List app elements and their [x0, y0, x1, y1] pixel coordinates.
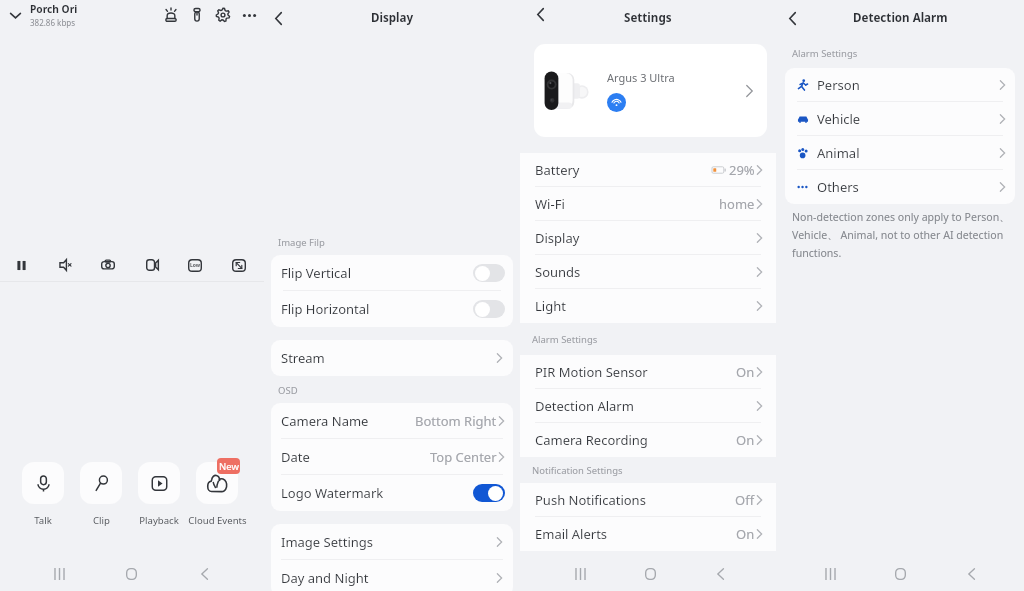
- button[interactable]: Stream: [271, 340, 513, 376]
- staticText: Wi-Fi: [535, 195, 565, 213]
- button[interactable]: Toggle: [473, 484, 505, 502]
- staticText: Sounds: [535, 263, 581, 281]
- button[interactable]: Pause: [8, 252, 34, 278]
- staticText: Non-detection zones only apply to Person…: [792, 210, 1010, 260]
- button[interactable]: Home: [635, 559, 665, 589]
- staticText: Light: [535, 297, 566, 315]
- button[interactable]: More options: [238, 4, 260, 26]
- button[interactable]: Image Settings: [271, 524, 513, 560]
- staticText: Battery: [535, 161, 580, 179]
- button[interactable]: Back: [705, 559, 735, 589]
- button[interactable]: Back: [189, 559, 219, 589]
- button[interactable]: Snapshot: [95, 252, 121, 278]
- staticText: Low: [190, 262, 201, 269]
- staticText: Date: [281, 448, 310, 466]
- staticText: Talk: [34, 514, 52, 527]
- staticText: Flip Vertical: [281, 264, 352, 282]
- button[interactable]: Home: [116, 559, 146, 589]
- staticText: Alarm Settings: [532, 333, 598, 346]
- button[interactable]: Email Alerts: [520, 517, 776, 551]
- button[interactable]: Back: [263, 3, 293, 33]
- staticText: Alarm Settings: [792, 47, 858, 60]
- button[interactable]: Wi-Fi: [520, 187, 776, 221]
- button[interactable]: Toggle: [473, 300, 505, 318]
- button[interactable]: PIR Motion Sensor: [520, 355, 776, 389]
- staticText: Person: [817, 76, 860, 94]
- staticText: OSD: [278, 384, 298, 397]
- staticText: Clip: [93, 514, 110, 527]
- staticText: Stream: [281, 349, 325, 367]
- button[interactable]: Push Notifications: [520, 483, 776, 517]
- staticText: Logo Watermark: [281, 484, 384, 502]
- staticText: Camera Recording: [535, 431, 648, 449]
- staticText: Display: [371, 10, 414, 26]
- button[interactable]: Toggle: [473, 264, 505, 282]
- staticText: Flip Horizontal: [281, 300, 370, 318]
- staticText: PIR Motion Sensor: [535, 363, 648, 381]
- button[interactable]: Record video: [139, 252, 165, 278]
- button[interactable]: Camera Recording: [520, 423, 776, 457]
- staticText: New: [219, 460, 239, 473]
- button[interactable]: Person: [785, 68, 1015, 102]
- button[interactable]: Day and Night: [271, 560, 513, 591]
- staticText: Bottom Right: [415, 412, 497, 430]
- button[interactable]: Back: [777, 3, 807, 33]
- staticText: Camera Name: [281, 412, 369, 430]
- button[interactable]: Flashlight: [186, 4, 208, 26]
- staticText: Detection Alarm: [535, 397, 634, 415]
- staticText: Animal: [817, 144, 860, 162]
- button[interactable]: Recents: [565, 559, 595, 589]
- staticText: Detection Alarm: [853, 10, 948, 26]
- staticText: Image Settings: [281, 533, 374, 551]
- button[interactable]: Light: [520, 289, 776, 323]
- staticText: 382.86 kbps: [30, 17, 76, 28]
- staticText: Argus 3 Ultra: [607, 70, 675, 85]
- button[interactable]: Camera Name: [271, 403, 513, 439]
- button[interactable]: Others: [785, 170, 1015, 204]
- staticText: Others: [817, 178, 859, 196]
- button[interactable]: Recents: [44, 559, 74, 589]
- button[interactable]: Collapse: [3, 3, 27, 27]
- button[interactable]: Mute: [52, 252, 78, 278]
- button[interactable]: Logo Watermark: [271, 475, 513, 511]
- staticText: Image Filp: [278, 236, 325, 249]
- button[interactable]: [138, 462, 180, 504]
- button[interactable]: Display: [520, 221, 776, 255]
- staticText: On: [736, 431, 755, 449]
- button[interactable]: Flip Horizontal: [271, 291, 513, 327]
- staticText: Settings: [624, 10, 672, 26]
- button[interactable]: Siren: [160, 4, 182, 26]
- staticText: Top Center: [430, 448, 497, 466]
- button[interactable]: Flip Vertical: [271, 255, 513, 291]
- staticText: Vehicle: [817, 110, 861, 128]
- button[interactable]: Animal: [785, 136, 1015, 170]
- staticText: Playback: [139, 514, 179, 527]
- button[interactable]: [22, 462, 64, 504]
- button[interactable]: Detection Alarm: [520, 389, 776, 423]
- staticText: home: [719, 195, 755, 213]
- button[interactable]: [80, 462, 122, 504]
- button[interactable]: Home: [885, 559, 915, 589]
- staticText: On: [736, 525, 755, 543]
- staticText: Day and Night: [281, 569, 369, 587]
- button[interactable]: [196, 462, 238, 504]
- staticText: Porch Ori: [30, 2, 78, 16]
- staticText: Display: [535, 229, 580, 247]
- staticText: Push Notifications: [535, 491, 646, 509]
- staticText: Notification Settings: [532, 464, 623, 477]
- button[interactable]: Battery: [520, 153, 776, 187]
- button[interactable]: Back: [956, 559, 986, 589]
- button[interactable]: Quality Low: [182, 252, 208, 278]
- staticText: 29%: [729, 161, 755, 179]
- button[interactable]: Fullscreen: [226, 252, 252, 278]
- staticText: On: [736, 363, 755, 381]
- button[interactable]: Argus 3 Ultra: [534, 44, 767, 137]
- button[interactable]: Sounds: [520, 255, 776, 289]
- button[interactable]: Vehicle: [785, 102, 1015, 136]
- button[interactable]: Settings: [212, 4, 234, 26]
- button[interactable]: Back: [525, 0, 555, 29]
- staticText: Email Alerts: [535, 525, 608, 543]
- staticText: Off: [735, 491, 755, 509]
- button[interactable]: Recents: [815, 559, 845, 589]
- button[interactable]: Date: [271, 439, 513, 475]
